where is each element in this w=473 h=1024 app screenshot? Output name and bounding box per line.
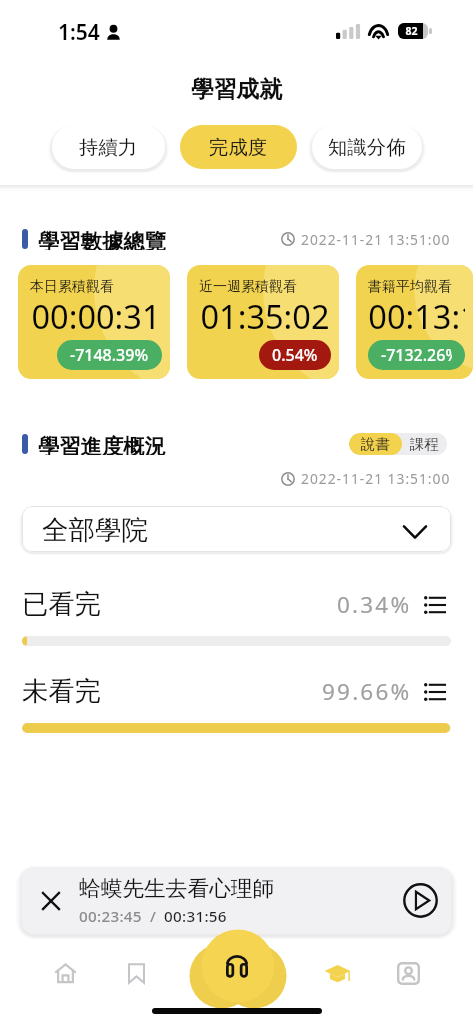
staticText: 近一週累積觀看 xyxy=(199,278,297,296)
staticText: / xyxy=(142,906,164,927)
staticText: 未看完 xyxy=(22,675,101,708)
staticText: 1:54 xyxy=(58,18,100,47)
staticText: 00:31:56 xyxy=(164,906,227,927)
staticText: 2022-11-21 13:51:00 xyxy=(301,469,451,488)
staticText: 00:00:31 xyxy=(30,294,162,338)
button[interactable]: 知識分佈 xyxy=(312,125,422,169)
button[interactable]: Profile xyxy=(378,947,438,999)
button[interactable]: Now playing xyxy=(189,917,287,1015)
button[interactable]: Play xyxy=(389,867,451,934)
button[interactable]: Home xyxy=(35,947,95,999)
staticText: 知識分佈 xyxy=(328,135,406,159)
staticText: -7148.39% xyxy=(70,344,149,366)
button[interactable]: 全部學院 xyxy=(22,506,451,552)
button[interactable]: 近一週累積觀看 xyxy=(187,265,339,379)
button[interactable]: Details xyxy=(424,593,451,617)
staticText: -7132.26% xyxy=(381,344,452,366)
button[interactable]: 持續力 xyxy=(52,125,165,169)
other: Expand xyxy=(403,525,427,539)
staticText: 已看完 xyxy=(22,588,101,621)
staticText: 0.54% xyxy=(272,344,318,366)
staticText: 學習數據總覽 xyxy=(38,228,166,250)
staticText: 全部學院 xyxy=(42,513,148,546)
button[interactable]: 書籍平均觀看 xyxy=(356,265,473,379)
button[interactable]: 說書 xyxy=(349,433,402,455)
staticText: 99.66% xyxy=(322,676,412,707)
staticText: 2022-11-21 13:51:00 xyxy=(301,230,451,249)
staticText: 課程 xyxy=(410,435,439,453)
button[interactable]: Bookmarks xyxy=(106,947,166,999)
staticText: 說書 xyxy=(361,435,390,453)
staticText: 本日累積觀看 xyxy=(30,278,114,296)
button[interactable]: Close xyxy=(22,867,79,934)
button[interactable]: Courses xyxy=(307,947,367,999)
staticText: 01:35:02 xyxy=(199,294,331,338)
staticText: 學習進度概況 xyxy=(38,433,166,455)
staticText: 學習成就 xyxy=(0,75,473,104)
button[interactable]: 課程 xyxy=(402,433,447,455)
staticText: 0.34% xyxy=(337,589,412,620)
button[interactable]: Details xyxy=(424,680,451,704)
staticText: 書籍平均觀看 xyxy=(368,278,452,296)
staticText: 持續力 xyxy=(79,135,138,159)
button[interactable]: 完成度 xyxy=(180,125,297,169)
staticText: 00:23:45 xyxy=(79,906,142,927)
staticText: 00:13:1 xyxy=(368,294,465,338)
staticText: 82 xyxy=(405,24,418,38)
button[interactable]: 本日累積觀看 xyxy=(18,265,170,379)
button[interactable]: Close xyxy=(22,867,451,934)
staticText: 蛤蟆先生去看心理師 xyxy=(79,875,275,902)
staticText: 完成度 xyxy=(209,135,268,159)
